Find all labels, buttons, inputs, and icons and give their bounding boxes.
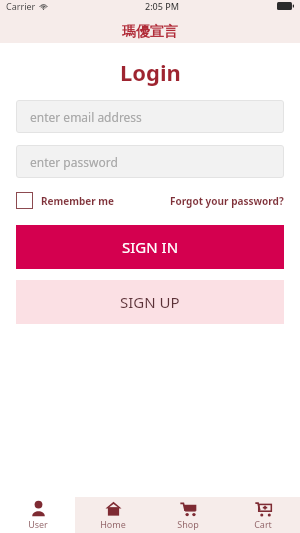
button[interactable]: Remember me <box>16 192 115 209</box>
staticText: SIGN IN <box>122 237 179 257</box>
staticText: Carrier <box>6 0 36 12</box>
button[interactable]: Forgot your password? <box>170 194 284 208</box>
button[interactable]: Cart <box>225 497 300 533</box>
staticText: Forgot your password? <box>170 194 284 208</box>
staticText: Cart <box>254 518 272 530</box>
button[interactable]: User <box>0 497 75 533</box>
button[interactable]: Home <box>75 497 150 533</box>
button[interactable]: enter email address <box>16 100 284 133</box>
button[interactable]: SIGN UP <box>16 280 284 324</box>
staticText: enter password <box>30 154 118 170</box>
staticText: 瑪優宣言 <box>122 23 178 41</box>
staticText: enter email address <box>30 109 142 125</box>
staticText: Login <box>120 57 181 87</box>
button[interactable]: enter password <box>16 145 284 178</box>
button[interactable]: SIGN IN <box>16 225 284 269</box>
staticText: User <box>28 518 48 530</box>
staticText: Home <box>100 518 126 530</box>
staticText: 2:05 PM <box>145 0 179 12</box>
staticText: Remember me <box>41 194 115 208</box>
button[interactable]: Shop <box>150 497 225 533</box>
staticText: Shop <box>177 518 199 530</box>
staticText: SIGN UP <box>120 292 180 312</box>
